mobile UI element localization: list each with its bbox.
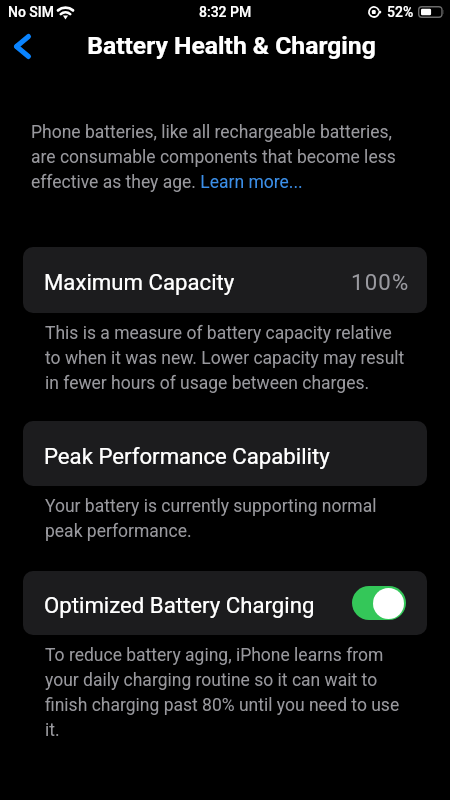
button[interactable]: Maximum Capacity	[23, 247, 427, 313]
button[interactable]: Back	[0, 24, 44, 68]
staticText: 8:32 PM	[199, 4, 252, 20]
staticText: To reduce battery aging, iPhone learns f…	[45, 645, 411, 740]
button[interactable]: Peak Performance Capability	[23, 421, 427, 486]
staticText: No SIM	[8, 4, 55, 20]
staticText: Optimized Battery Charging	[44, 592, 315, 618]
button[interactable]: Optimized Battery Charging	[352, 586, 406, 620]
staticText: 52%	[387, 4, 414, 20]
staticText: 100%	[351, 269, 410, 295]
staticText: Your battery is currently supporting nor…	[45, 496, 411, 541]
button[interactable]: Optimized Battery Charging	[23, 571, 427, 635]
staticText: Battery Health & Charging	[87, 31, 376, 60]
staticText: This is a measure of battery capacity re…	[45, 323, 411, 393]
staticText: Phone batteries, like all rechargeable b…	[31, 122, 411, 192]
staticText: Maximum Capacity	[44, 269, 235, 295]
staticText: Peak Performance Capability	[44, 443, 330, 469]
